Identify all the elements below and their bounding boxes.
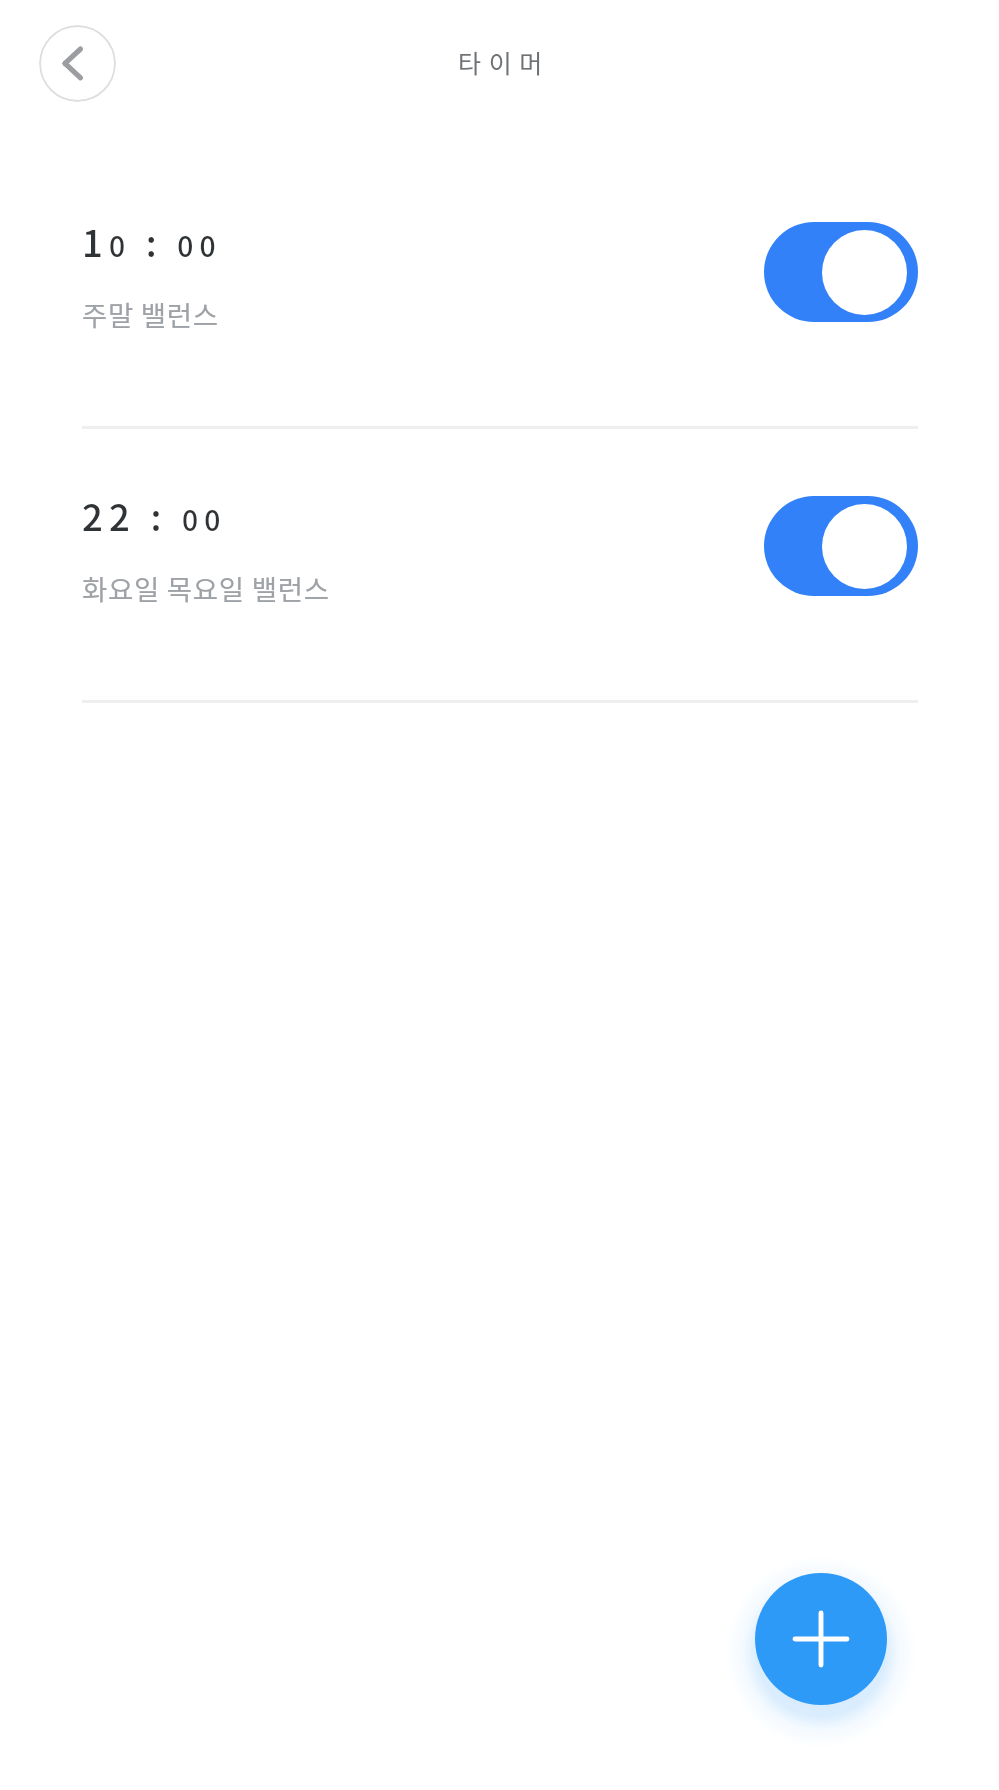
button[interactable]: Turn off the 22 : 00 timer — [764, 496, 918, 596]
button[interactable]: Add timer — [755, 1573, 887, 1705]
staticText: 22 : 00 — [82, 489, 227, 542]
staticText: 화요일 목요일 밸런스 — [82, 568, 330, 608]
button[interactable]: Back — [39, 25, 116, 102]
staticText: 타이머 — [458, 44, 550, 80]
button[interactable]: Turn off the 10 : 00 timer — [764, 222, 918, 322]
staticText: 10 : 00 — [82, 215, 222, 268]
staticText: 주말 밸런스 — [82, 294, 219, 334]
